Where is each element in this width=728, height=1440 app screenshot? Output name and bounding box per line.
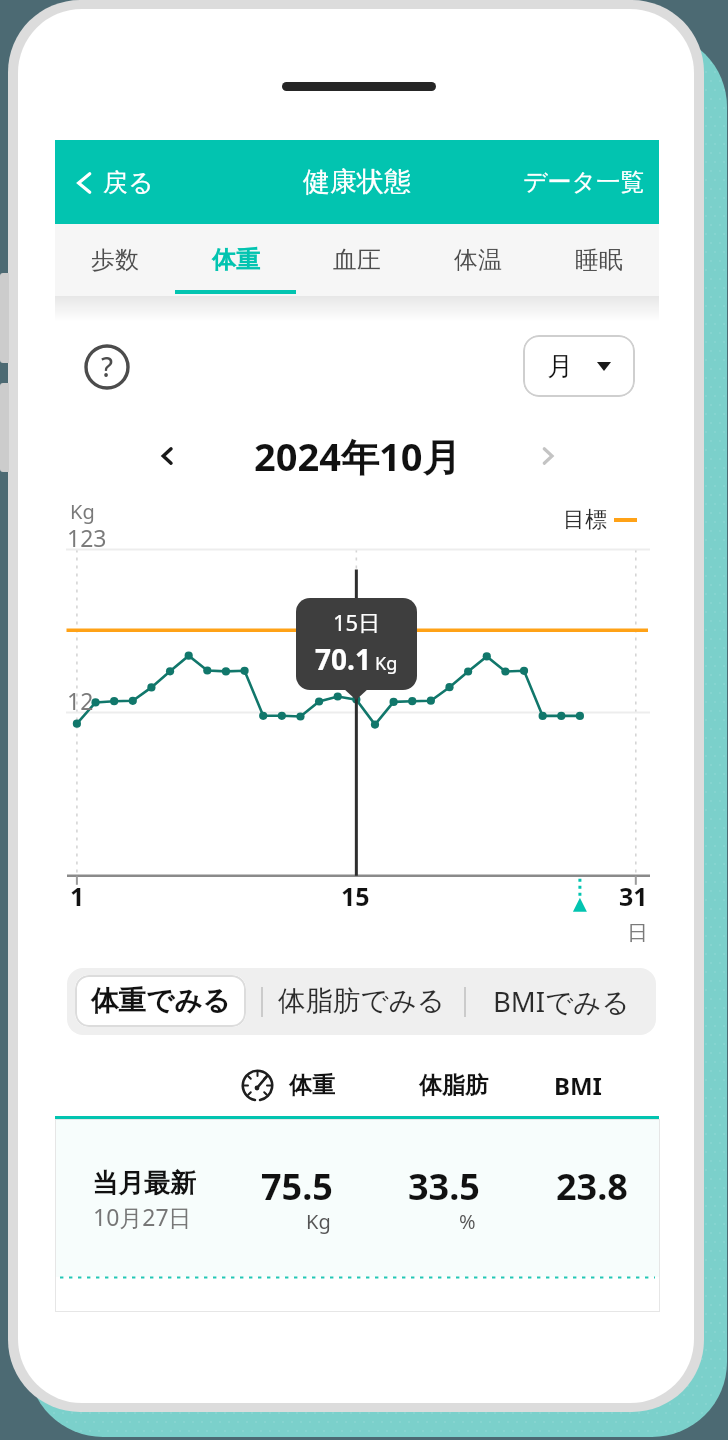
staticText: BMI	[554, 1069, 602, 1102]
button[interactable]: 当月最新	[55, 1119, 660, 1312]
staticText: 123	[67, 522, 107, 553]
staticText: Kg	[306, 1208, 331, 1235]
staticText: BMIでみる	[493, 983, 630, 1021]
staticText: 15	[341, 879, 370, 913]
staticText: 23.8	[556, 1162, 628, 1211]
staticText: 体重でみる	[91, 984, 231, 1019]
button[interactable]: 体重でみる	[75, 975, 246, 1027]
staticText: 日	[627, 920, 648, 946]
staticText: 12	[67, 685, 94, 716]
staticText: 睡眠	[575, 245, 623, 275]
button[interactable]: 体脂肪でみる	[271, 968, 451, 1035]
staticText: 2024年10月	[254, 430, 461, 482]
staticText: 体重	[212, 245, 260, 275]
staticText: Kg	[70, 498, 95, 525]
staticText: 歩数	[91, 245, 139, 275]
staticText: 15日	[333, 607, 381, 637]
staticText: 健康状態	[303, 165, 411, 199]
staticText: 10月27日	[93, 1201, 192, 1232]
staticText: 70.1	[315, 640, 371, 678]
button[interactable]: Help	[83, 343, 131, 391]
button[interactable]: 睡眠	[538, 224, 659, 296]
staticText: ?	[101, 348, 114, 385]
button[interactable]: 戻る	[75, 167, 154, 198]
staticText: 月	[547, 350, 573, 383]
button[interactable]: データ一覧	[523, 167, 645, 197]
button[interactable]: 月	[523, 335, 635, 397]
button[interactable]: 体重	[175, 224, 296, 296]
button[interactable]: 歩数	[55, 224, 175, 296]
button[interactable]: 血圧	[296, 224, 417, 296]
button[interactable]: BMIでみる	[466, 968, 656, 1035]
button[interactable]: Next month	[541, 446, 554, 466]
staticText: 当月最新	[92, 1167, 196, 1200]
staticText: Kg	[375, 651, 398, 676]
staticText: 体重	[289, 1071, 335, 1100]
staticText: 戻る	[103, 167, 154, 198]
staticText: 目標	[563, 506, 607, 534]
staticText: %	[459, 1208, 476, 1235]
staticText: 33.5	[408, 1162, 480, 1211]
staticText: 血圧	[333, 245, 381, 275]
button[interactable]: Previous month	[160, 446, 173, 466]
staticText: 1	[70, 879, 85, 913]
staticText: 体脂肪	[419, 1071, 488, 1100]
staticText: 31	[619, 879, 648, 913]
staticText: 体脂肪でみる	[278, 984, 445, 1019]
staticText: 75.5	[261, 1162, 333, 1211]
button[interactable]: 体温	[417, 224, 538, 296]
staticText: 体温	[454, 245, 502, 275]
